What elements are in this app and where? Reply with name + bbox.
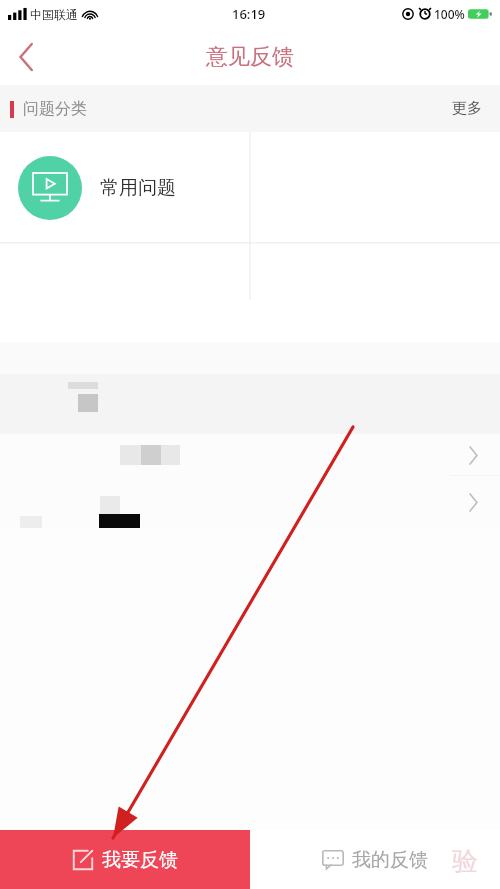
button[interactable] — [0, 434, 500, 476]
button[interactable]: 常用问题 — [0, 132, 250, 243]
button[interactable]: 我要反馈 — [0, 830, 250, 889]
staticText: 意见反馈 — [206, 43, 294, 71]
staticText: 常用问题 — [100, 176, 176, 200]
staticText: 更多 — [452, 99, 482, 118]
staticText: 问题分类 — [23, 99, 87, 119]
staticText: 我要反馈 — [102, 848, 178, 872]
button[interactable] — [0, 476, 500, 528]
staticText: 16:19 — [232, 5, 266, 23]
staticText: 验 — [452, 845, 478, 878]
button[interactable]: Back — [0, 31, 52, 83]
staticText: 100% — [434, 6, 465, 22]
staticText: 中国联通 — [30, 7, 78, 22]
button[interactable]: 更多 — [434, 91, 500, 126]
button[interactable]: 验 — [250, 830, 500, 889]
staticText: 我的反馈 — [352, 848, 428, 872]
